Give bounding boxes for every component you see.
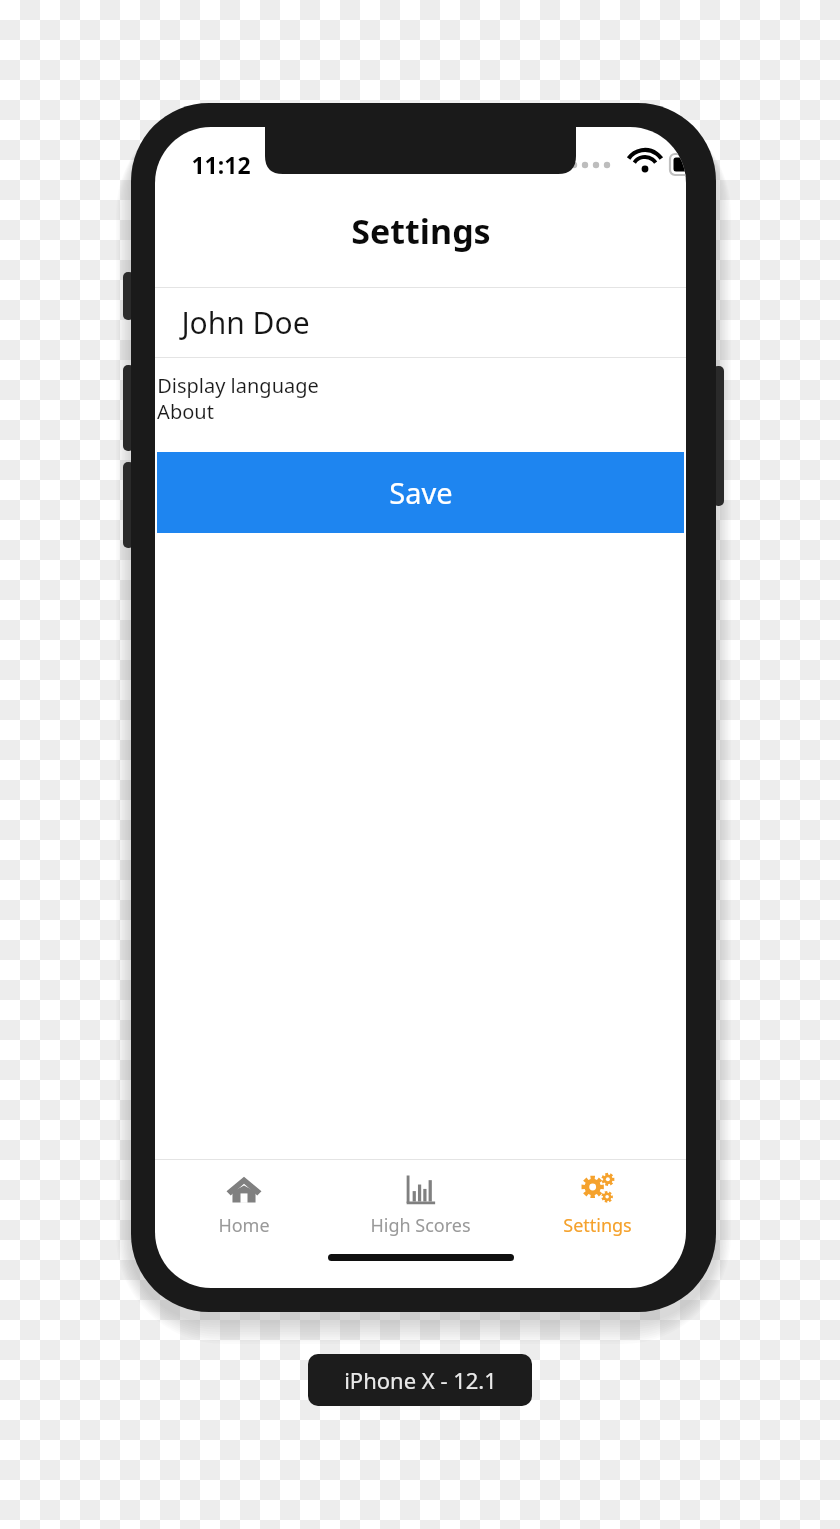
staticText: High Scores [370,1213,471,1238]
staticText: Settings [351,208,491,254]
staticText: John Doe [181,302,310,343]
button[interactable]: Home [155,1160,332,1238]
staticText: About [157,398,214,424]
other: Home [225,1171,263,1209]
button[interactable]: Settings [509,1160,686,1238]
other: High Scores [402,1171,440,1209]
staticText: 11:12 [191,149,251,180]
button[interactable]: John Doe [155,288,686,357]
button[interactable]: High Scores [332,1160,509,1238]
other: Settings [579,1171,617,1209]
staticText: Display language [157,372,319,398]
button[interactable]: Save [157,452,684,533]
button[interactable]: Display language [155,372,686,398]
button[interactable]: About [155,398,686,424]
staticText: iPhone X - 12.1 [344,1365,497,1395]
staticText: Home [218,1213,270,1238]
staticText: Settings [563,1213,632,1238]
staticText: Save [389,473,453,512]
